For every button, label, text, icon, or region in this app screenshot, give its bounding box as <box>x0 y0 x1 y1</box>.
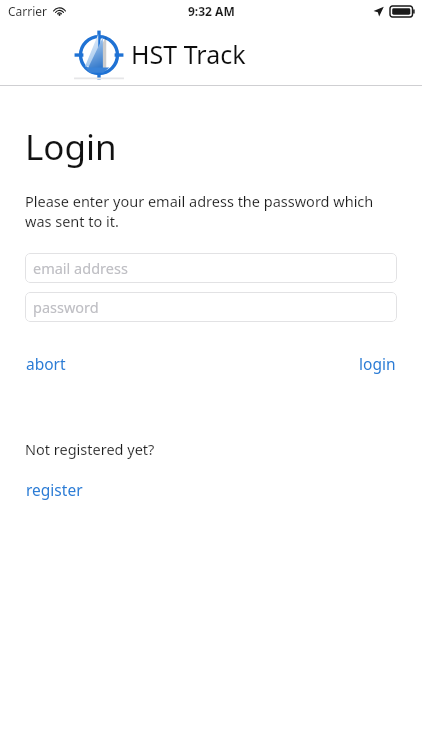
button[interactable]: register <box>25 476 84 503</box>
staticText: Login <box>25 123 117 171</box>
staticText: HST Track <box>131 37 246 71</box>
staticText: login <box>359 353 396 374</box>
staticText: Carrier <box>8 3 48 19</box>
staticText: 9:32 AM <box>188 3 235 19</box>
staticText: email address <box>33 258 128 278</box>
staticText: Please enter your email adress the passw… <box>25 191 397 231</box>
staticText: register <box>26 479 83 500</box>
button[interactable]: password <box>25 292 397 322</box>
button[interactable]: email address <box>25 253 397 283</box>
staticText: password <box>33 297 99 317</box>
staticText: abort <box>26 353 66 374</box>
button[interactable]: abort <box>25 350 67 377</box>
staticText: Not registered yet? <box>25 439 155 459</box>
button[interactable]: login <box>358 350 397 377</box>
